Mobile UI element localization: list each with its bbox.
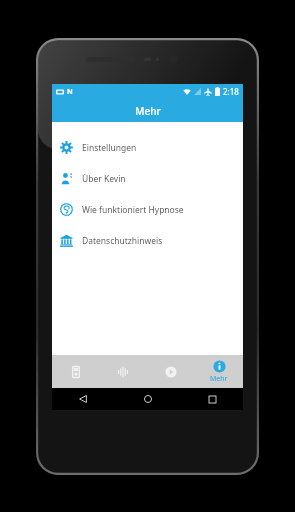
- staticText: Einstellungen: [82, 142, 137, 154]
- button[interactable]: Home: [137, 388, 159, 410]
- button[interactable]: Play: [147, 355, 195, 388]
- staticText: N: [67, 87, 73, 97]
- staticText: Mehr: [210, 374, 228, 384]
- staticText: Wie funktioniert Hypnose: [82, 204, 184, 216]
- button[interactable]: Über Kevin: [52, 163, 243, 194]
- button[interactable]: Player: [52, 355, 99, 388]
- staticText: Datenschutzhinweis: [82, 235, 163, 247]
- button[interactable]: Recent apps: [201, 388, 223, 410]
- button[interactable]: Einstellungen: [52, 132, 243, 163]
- button[interactable]: Back: [72, 388, 94, 410]
- button[interactable]: Sessions: [99, 355, 147, 388]
- button[interactable]: Datenschutzhinweis: [52, 225, 243, 256]
- staticText: Über Kevin: [82, 173, 126, 185]
- staticText: 2:18: [223, 86, 239, 97]
- button[interactable]: Wie funktioniert Hypnose: [52, 194, 243, 225]
- button[interactable]: Mehr: [195, 355, 243, 388]
- staticText: Mehr: [135, 104, 161, 118]
